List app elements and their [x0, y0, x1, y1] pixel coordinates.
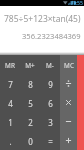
staticText: 356.2323484369 — [22, 31, 81, 41]
staticText: 4 — [8, 98, 13, 109]
button[interactable]: 8 — [20, 74, 40, 93]
staticText: 8 — [28, 79, 33, 90]
staticText: 3 — [48, 117, 53, 128]
button[interactable]: 5 — [20, 93, 40, 112]
button[interactable]: MC — [60, 55, 77, 74]
staticText: MR — [5, 61, 15, 70]
staticText: 11:55 — [70, 0, 83, 6]
button[interactable]: Add — [60, 131, 77, 150]
staticText: 2 — [28, 117, 33, 128]
button[interactable]: Divide — [60, 74, 77, 93]
staticText: 0 — [28, 136, 33, 147]
button[interactable]: = — [40, 131, 60, 150]
staticText: M+ — [25, 61, 35, 70]
staticText: 6 — [48, 98, 53, 109]
staticText: M- — [46, 61, 54, 70]
button[interactable]: 2 — [20, 112, 40, 131]
button[interactable]: Multiply — [60, 93, 77, 112]
button[interactable]: . — [0, 131, 20, 150]
button[interactable]: 4 — [0, 93, 20, 112]
button[interactable]: 7 — [0, 74, 20, 93]
button[interactable]: MR — [0, 55, 20, 74]
button[interactable]: 3 — [40, 112, 60, 131]
button[interactable]: 0 — [20, 131, 40, 150]
staticText: 785÷5+123×tan(45) — [4, 13, 81, 25]
button[interactable]: M- — [40, 55, 60, 74]
button[interactable]: M+ — [20, 55, 40, 74]
button[interactable]: 6 — [40, 93, 60, 112]
staticText: = — [48, 136, 53, 147]
button[interactable]: Subtract — [60, 112, 77, 131]
staticText: 9 — [48, 79, 53, 90]
staticText: MC — [64, 61, 74, 70]
staticText: 7 — [8, 79, 13, 90]
button[interactable]: 1 — [0, 112, 20, 131]
button[interactable]: 9 — [40, 74, 60, 93]
staticText: 5 — [28, 98, 33, 109]
staticText: 1 — [8, 117, 13, 128]
staticText: . — [9, 136, 12, 147]
